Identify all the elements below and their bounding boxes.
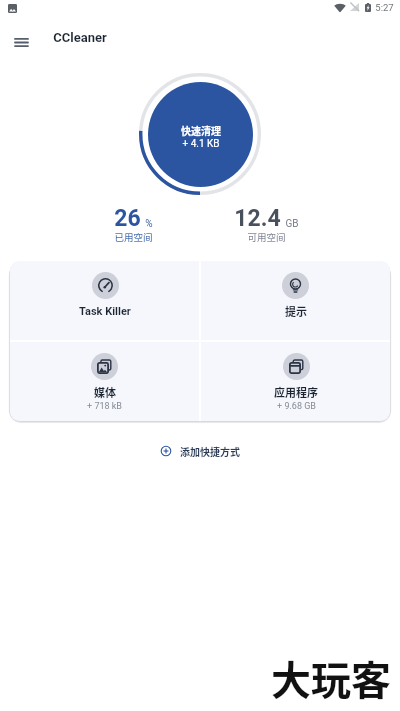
staticText: %: [145, 218, 153, 230]
button[interactable]: 媒体: [10, 342, 199, 403]
button[interactable]: 快速清理: [148, 82, 253, 187]
button[interactable]: 添加快捷方式: [153, 440, 248, 462]
staticText: 已用空间: [114, 230, 153, 244]
button[interactable]: 应用程序: [201, 342, 390, 403]
staticText: 应用程序: [274, 384, 318, 400]
staticText: + 718 kB: [87, 401, 122, 412]
button[interactable]: Task Killer: [10, 261, 199, 307]
staticText: GB: [285, 218, 299, 230]
staticText: 5:27: [375, 2, 394, 13]
button[interactable]: 提示: [201, 261, 390, 310]
staticText: 26: [114, 205, 141, 232]
staticText: + 9.68 GB: [277, 401, 316, 412]
staticText: + 4.1 KB: [182, 138, 220, 150]
staticText: 大玩客: [271, 649, 391, 707]
staticText: 提示: [285, 303, 307, 319]
staticText: 可用空间: [247, 230, 286, 244]
button[interactable]: Open navigation menu: [11, 32, 31, 52]
staticText: 添加快捷方式: [180, 444, 240, 458]
staticText: 快速清理: [181, 123, 221, 137]
staticText: CCleaner: [53, 30, 107, 45]
staticText: 12.4: [234, 205, 281, 232]
staticText: 媒体: [94, 384, 116, 400]
staticText: Task Killer: [79, 305, 131, 318]
